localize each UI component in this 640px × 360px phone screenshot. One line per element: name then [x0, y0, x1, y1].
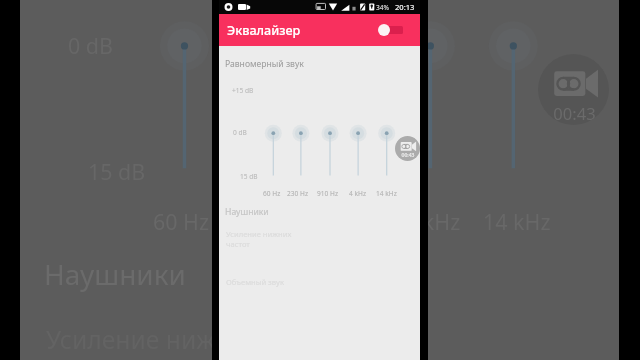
button[interactable]: Усиление нижних частот	[27, 309, 610, 360]
staticText: 00:43	[553, 102, 596, 125]
staticText: 0 dB	[233, 128, 247, 137]
staticText: 14 kHz	[376, 189, 397, 198]
staticText: 20:13	[395, 2, 415, 12]
staticText: 0 dB	[68, 31, 113, 60]
staticText: +15 dB	[232, 86, 254, 95]
staticText: 34%	[376, 3, 390, 12]
staticText: Усиление нижних частот	[46, 323, 259, 360]
staticText: 4 kHz	[349, 189, 366, 198]
staticText: Наушники	[225, 206, 269, 218]
button[interactable]: Screen recorder 00:43	[538, 54, 609, 125]
staticText: 4 kHz	[405, 207, 461, 236]
staticText: Эквалайзер	[227, 22, 301, 39]
staticText: Наушники	[44, 255, 186, 293]
staticText: 230 Hz	[287, 189, 309, 198]
staticText: 15 dB	[240, 172, 258, 181]
staticText: Объемный звук	[226, 277, 284, 287]
staticText: 230 Hz	[225, 207, 294, 236]
staticText: 15 dB	[88, 157, 146, 186]
staticText: 00:43	[401, 152, 415, 159]
staticText: 60 Hz	[153, 207, 210, 236]
button[interactable]: Screen recorder 00:43	[395, 136, 420, 161]
staticText: Равномерный звук	[225, 58, 304, 70]
staticText: 60 Hz	[263, 189, 281, 198]
staticText: 910 Hz	[317, 189, 339, 198]
staticText: 14 kHz	[483, 207, 551, 236]
staticText: Усиление нижних частот	[226, 229, 292, 249]
button[interactable]: Enable equalizer	[378, 22, 403, 38]
